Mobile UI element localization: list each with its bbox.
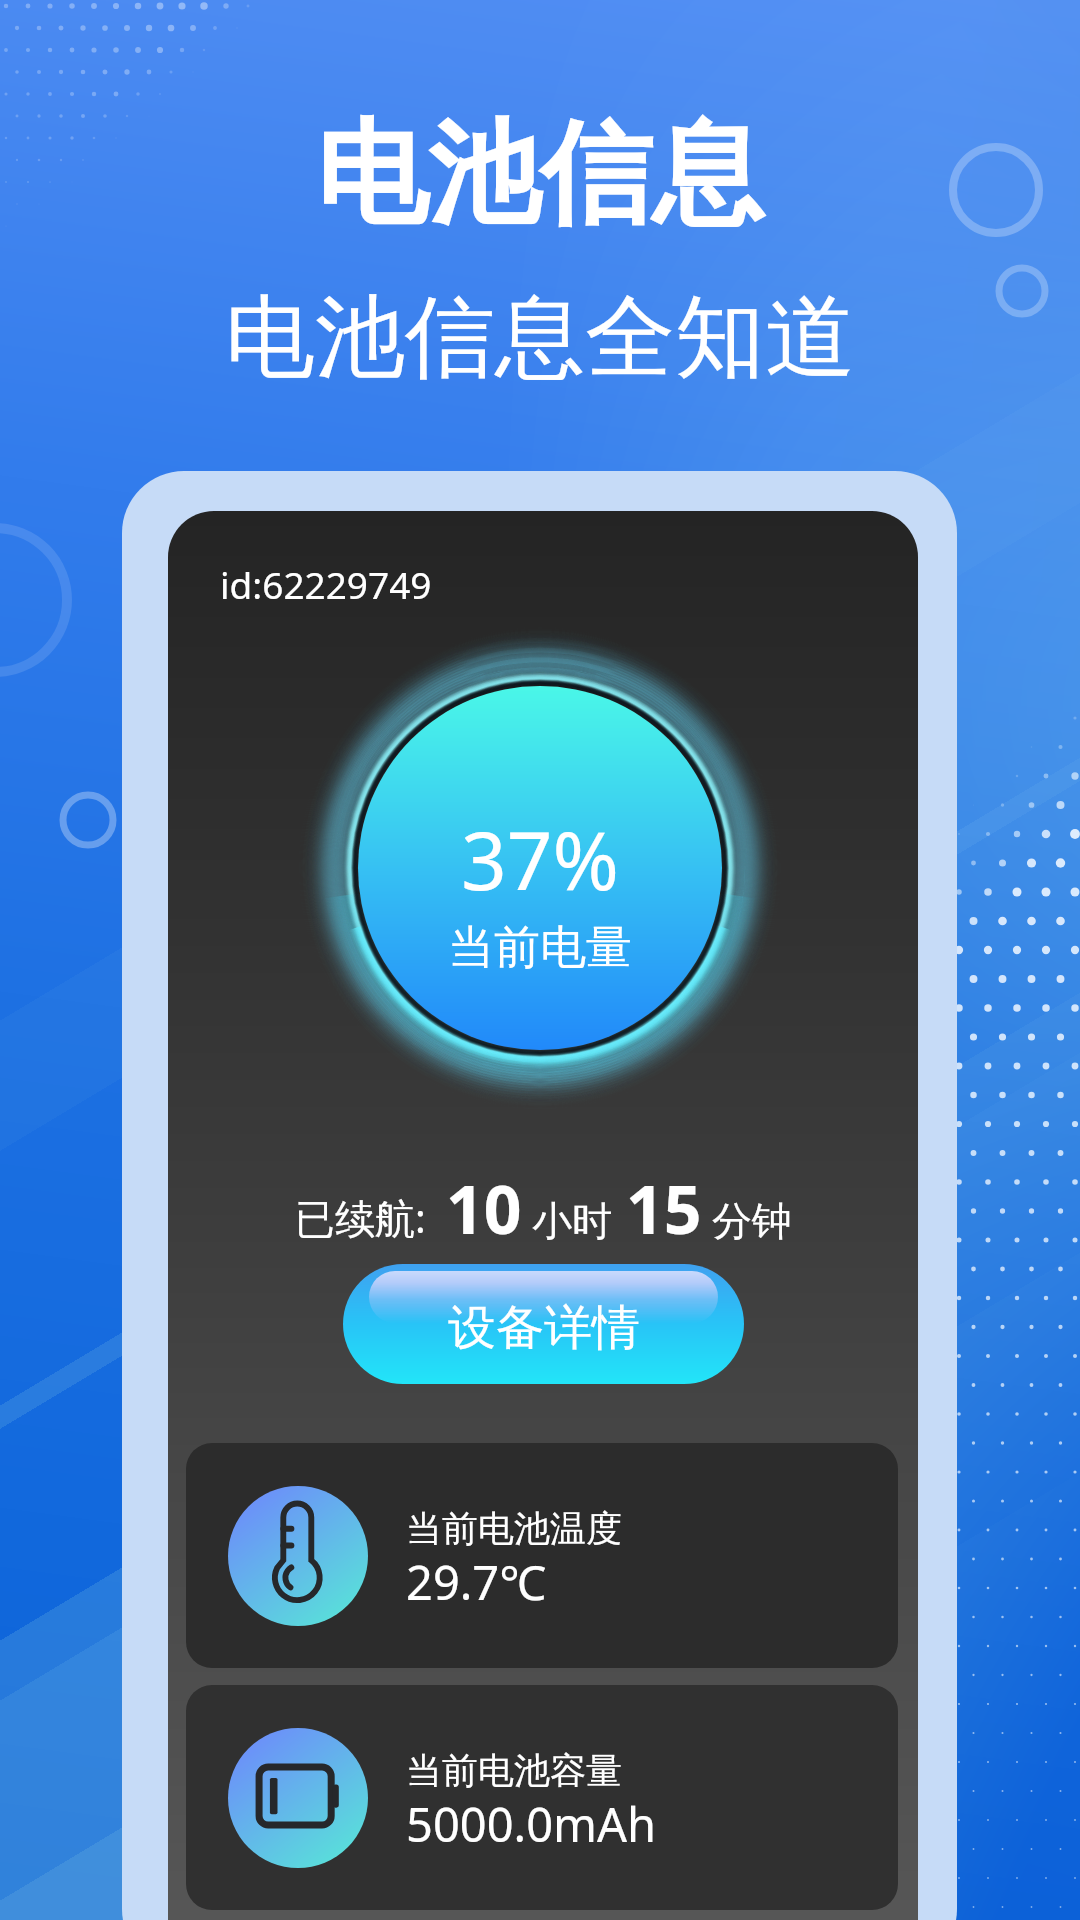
- staticText: 电池信息: [316, 104, 764, 245]
- button[interactable]: 当前电池温度: [186, 1443, 898, 1668]
- staticText: 5000.0mAh: [406, 1792, 657, 1856]
- staticText: 29.7℃: [406, 1550, 547, 1614]
- button[interactable]: 当前电池容量: [186, 1685, 898, 1910]
- staticText: 设备详情: [448, 1298, 640, 1358]
- staticText: 电池信息全知道: [225, 281, 855, 394]
- staticText: 小时: [532, 1196, 612, 1246]
- staticText: 15: [626, 1163, 702, 1253]
- staticText: 当前电量: [448, 919, 632, 977]
- staticText: 当前电池容量: [406, 1748, 622, 1793]
- staticText: 分钟: [712, 1196, 792, 1246]
- staticText: 37%: [461, 804, 619, 913]
- staticText: id:62229749: [220, 559, 432, 609]
- button[interactable]: 设备详情: [343, 1264, 744, 1384]
- staticText: 当前电池温度: [406, 1506, 622, 1551]
- staticText: 10: [446, 1163, 522, 1253]
- staticText: 已续航:: [295, 1190, 426, 1245]
